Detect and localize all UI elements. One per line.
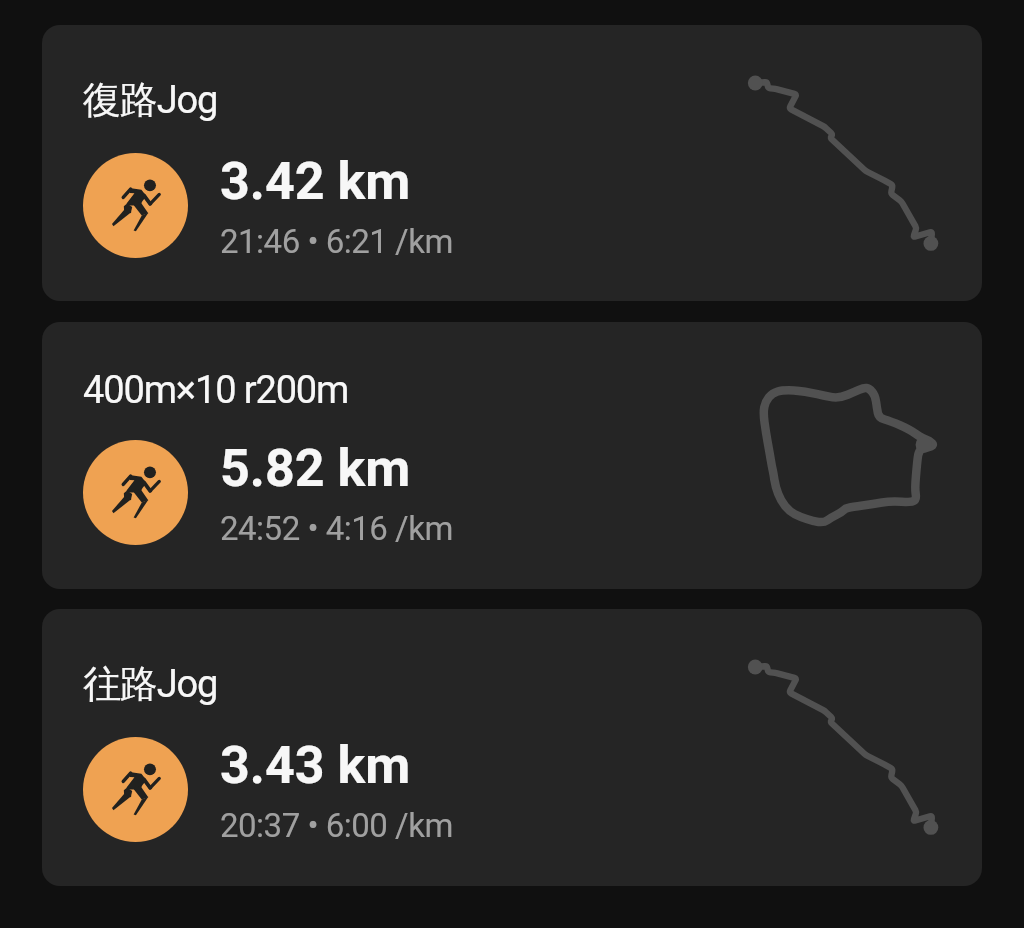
staticText: 復路Jog <box>83 76 218 124</box>
staticText: 5.82 km <box>220 438 411 499</box>
button[interactable]: Route map <box>42 609 982 886</box>
other: Running <box>111 763 160 816</box>
other: Running <box>111 179 160 232</box>
staticText: 3.42 km <box>220 151 411 212</box>
other: Running <box>111 466 160 519</box>
staticText: 3.43 km <box>220 735 411 796</box>
staticText: 21:46 • 6:21 /km <box>220 222 453 261</box>
staticText: 24:52 • 4:16 /km <box>220 509 453 548</box>
button[interactable]: Route map <box>42 322 982 589</box>
other: Route map <box>762 386 935 524</box>
other: Route map <box>749 659 939 834</box>
staticText: 往路Jog <box>83 660 218 708</box>
other: Route map <box>749 75 939 250</box>
staticText: 20:37 • 6:00 /km <box>220 806 453 845</box>
staticText: 400m×10 r200m <box>83 368 349 413</box>
button[interactable]: Route map <box>42 25 982 301</box>
